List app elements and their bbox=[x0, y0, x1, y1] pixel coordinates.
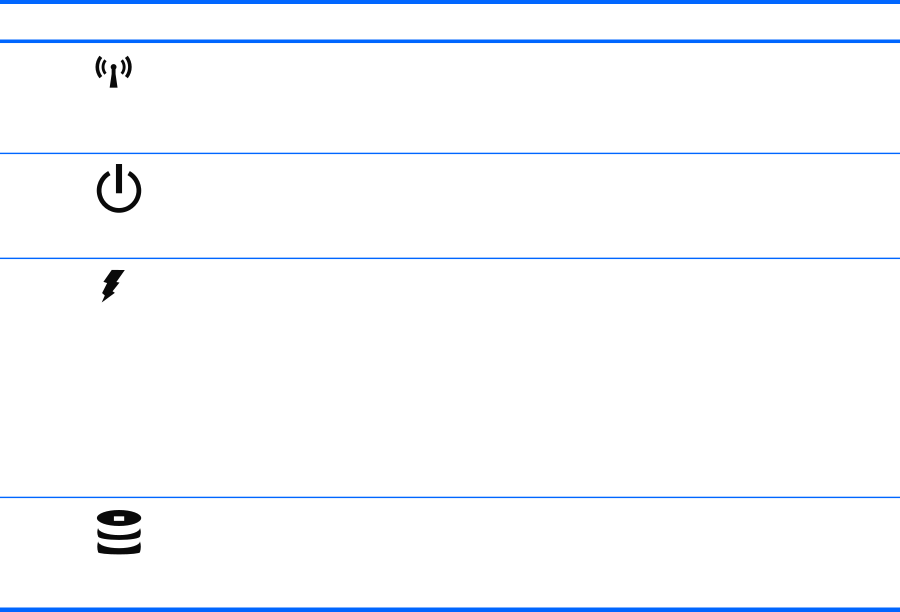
button[interactable]: Wireless bbox=[0, 43, 132, 88]
button[interactable]: AC power bbox=[0, 259, 125, 302]
button[interactable]: Power button bbox=[0, 154, 141, 213]
button[interactable]: Hard drive bbox=[0, 498, 141, 554]
